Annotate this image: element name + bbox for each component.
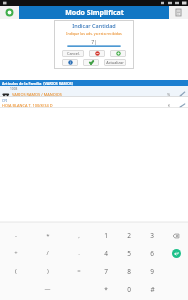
button[interactable]: 0 [117, 280, 140, 298]
staticText: Cancel. [67, 51, 80, 56]
staticText: 9 [150, 267, 154, 276]
staticText: 0 [127, 285, 131, 294]
staticText: * [104, 285, 108, 294]
button[interactable]: * [94, 280, 117, 298]
staticText: ) [47, 267, 49, 275]
staticText: — [44, 285, 51, 293]
staticText: Modo Simplificat [65, 8, 124, 18]
button[interactable]: Cancel. [62, 50, 84, 57]
button[interactable]: Intro [172, 249, 181, 258]
staticText: 5 [127, 249, 131, 258]
button[interactable]: Borrar [164, 227, 188, 244]
button[interactable]: Editar [178, 91, 186, 97]
staticText: Indicar Cantidad [72, 22, 116, 29]
button[interactable]: CFI [0, 97, 188, 108]
button[interactable]: 4 [94, 244, 117, 262]
staticText: ( [15, 267, 17, 275]
staticText: # [150, 285, 155, 294]
staticText: 6 [150, 249, 154, 258]
staticText: , [78, 232, 80, 240]
button[interactable]: 6 [140, 244, 164, 262]
button[interactable]: ( [0, 262, 32, 280]
button[interactable]: Documento [169, 6, 188, 19]
button[interactable]: ) [32, 262, 63, 280]
button[interactable]: Confirmar [83, 59, 99, 66]
staticText: 7| [91, 39, 97, 46]
button[interactable]: Informacion [62, 59, 78, 66]
staticText: Indique las uds. ya esta recibidas [66, 31, 122, 36]
button[interactable]: * [32, 227, 63, 244]
staticText: + [14, 249, 18, 257]
button[interactable]: Actualizar [104, 59, 126, 66]
button[interactable]: Anadir [110, 50, 126, 57]
button[interactable]: 3 [140, 227, 164, 244]
button[interactable]: + [0, 244, 32, 262]
staticText: € [168, 103, 171, 108]
button[interactable]: 1003 [0, 86, 188, 97]
button[interactable]: # [140, 280, 164, 298]
staticText: * [46, 232, 50, 240]
staticText: 8 [127, 267, 131, 276]
staticText: 2 [127, 231, 131, 240]
button[interactable]: = [63, 262, 94, 280]
staticText: VARIOS RAMOS / MANOJOS [12, 92, 167, 97]
button[interactable]: / [32, 244, 63, 262]
button[interactable]: — [32, 280, 63, 298]
button[interactable]: 5 [117, 244, 140, 262]
staticText: % [167, 92, 171, 97]
button[interactable]: Eliminar [89, 50, 105, 57]
button[interactable]: 7| [57, 38, 131, 47]
staticText: HOJA BLANCA T. 100/8/34 D [2, 103, 168, 108]
staticText: / [46, 249, 49, 257]
staticText: 1003 [10, 87, 18, 91]
staticText: 7 [104, 267, 108, 276]
staticText: CFI [2, 98, 8, 103]
staticText: - [15, 232, 17, 240]
staticText: Artículos de la Familia (VARIOS RAMOS) [2, 81, 74, 86]
button[interactable]: 1 [94, 227, 117, 244]
staticText: 4 [104, 249, 108, 258]
button[interactable]: 9 [140, 262, 164, 280]
staticText: 3 [150, 231, 154, 240]
staticText: Actualizar [106, 60, 124, 65]
staticText: = [77, 267, 81, 275]
button[interactable]: 2 [117, 227, 140, 244]
button[interactable]: Sincronizar [0, 6, 19, 19]
button[interactable]: 8 [117, 262, 140, 280]
button[interactable]: Editar [178, 103, 186, 108]
button[interactable]: 7 [94, 262, 117, 280]
staticText: 1 [104, 231, 108, 240]
staticText: . [78, 249, 80, 257]
